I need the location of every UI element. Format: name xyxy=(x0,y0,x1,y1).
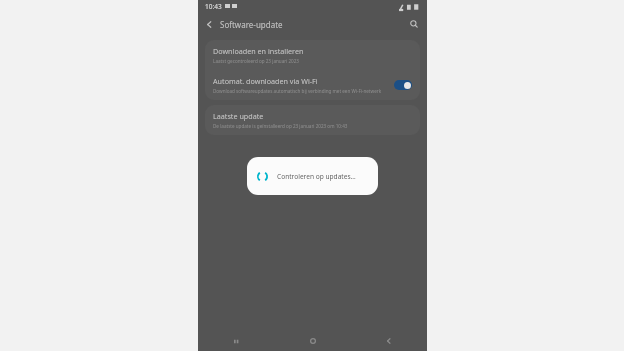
button[interactable]: Back xyxy=(198,13,220,35)
button[interactable]: Automat. downloaden via Wi-Fi xyxy=(205,70,420,100)
button[interactable]: Back xyxy=(351,331,427,351)
button[interactable]: Controleren op updates… xyxy=(247,157,378,195)
button[interactable]: Laatste update xyxy=(205,105,420,135)
staticText: Download softwareupdates automatisch bij… xyxy=(213,88,382,94)
staticText: Downloaden en installeren xyxy=(213,46,304,56)
button[interactable]: Home xyxy=(275,331,351,351)
staticText: Controleren op updates… xyxy=(277,172,356,181)
button[interactable]: Downloaden en installeren xyxy=(205,40,420,70)
staticText: Laatste update xyxy=(213,111,264,121)
staticText: 10:43 xyxy=(205,2,222,11)
button[interactable]: Search xyxy=(403,13,425,35)
staticText: De laatste update is geïnstalleerd op 23… xyxy=(213,123,348,129)
staticText: Automat. downloaden via Wi-Fi xyxy=(213,76,318,86)
staticText: Software-update xyxy=(220,19,283,30)
staticText: Laatst gecontroleerd op 23 januari 2023 xyxy=(213,58,300,64)
button[interactable]: Automatisch downloaden via Wi-Fi aan xyxy=(394,80,412,90)
button[interactable]: Recent apps xyxy=(198,331,275,351)
